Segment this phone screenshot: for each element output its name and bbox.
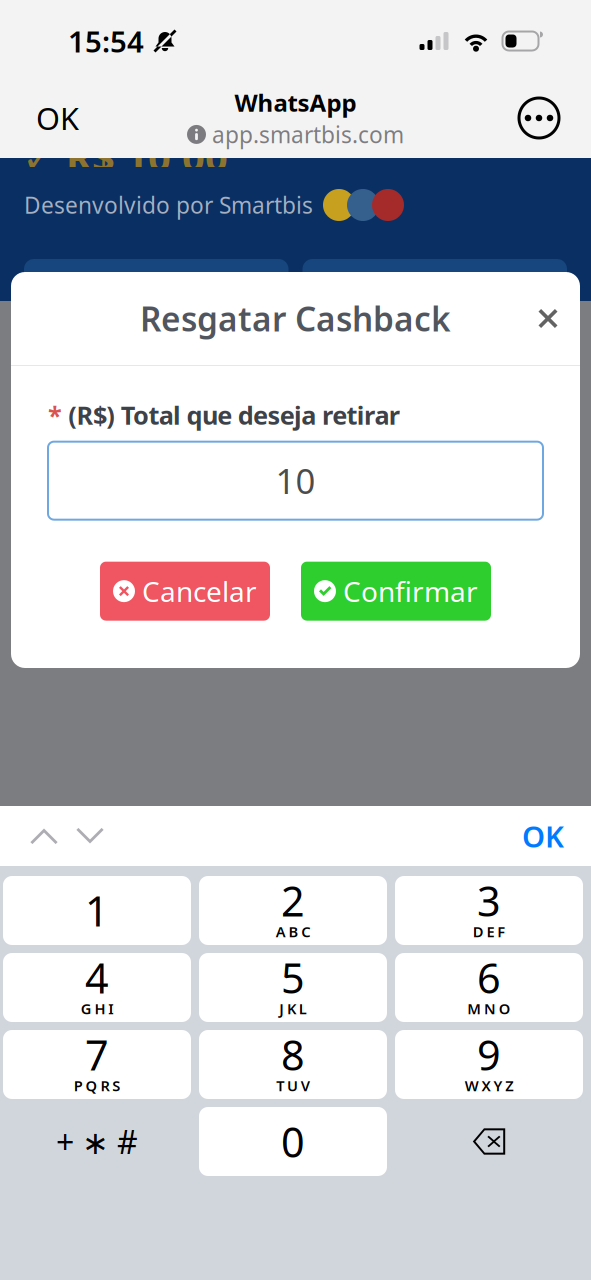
button[interactable]: 3 [395,876,583,945]
button[interactable]: More options [511,90,567,146]
staticText: Desenvolvido por Smartbis [24,190,313,220]
staticText: 9 [477,1027,501,1082]
staticText: 6 [477,950,501,1005]
button[interactable]: 7 [3,1030,191,1099]
button[interactable]: Previous field [15,810,73,861]
staticText: * [48,398,62,432]
staticText: Resgatar Cashback [140,296,451,341]
staticText: MNO [467,999,511,1018]
staticText: Confirmar [343,573,478,610]
staticText: WhatsApp [234,86,356,118]
staticText: WXYZ [465,1076,513,1095]
button[interactable]: 6 [395,953,583,1022]
staticText: ABC [276,922,310,941]
staticText: 4 [85,950,109,1005]
button[interactable]: OK [510,804,576,867]
staticText: 3 [477,873,501,928]
staticText: ✓ R$ 10,00 [22,130,228,183]
button[interactable]: 9 [395,1030,583,1099]
staticText: TUV [276,1076,310,1095]
button[interactable]: 1 [3,876,191,945]
staticText: DEF [473,922,505,941]
button[interactable]: 5 [199,953,387,1022]
staticText: PQRS [74,1076,120,1095]
staticText: + ∗ # [56,1120,138,1163]
button[interactable]: Cancelar [100,562,270,621]
button[interactable]: Symbols [3,1107,191,1176]
staticText: 5 [281,950,305,1005]
staticText: OK [36,98,79,138]
staticText: 7 [85,1027,109,1082]
staticText: (R$) Total que deseja retirar [62,398,400,432]
staticText: 10 [275,458,315,504]
staticText: OK [522,816,564,855]
button[interactable]: Next field [61,810,119,861]
staticText: 15:54 [68,21,144,60]
button[interactable]: Confirmar [301,562,491,621]
staticText: Cancelar [142,573,257,610]
staticText: GHI [81,999,113,1018]
staticText: 8 [281,1027,305,1082]
button[interactable]: OK [24,88,91,148]
button[interactable]: 0 [199,1107,387,1176]
button[interactable]: Close [527,297,569,339]
button[interactable]: 8 [199,1030,387,1099]
staticText: 2 [281,873,305,928]
staticText: 1 [85,883,109,938]
staticText: 0 [281,1114,305,1169]
button[interactable]: 2 [199,876,387,945]
button[interactable]: 4 [3,953,191,1022]
button[interactable]: Delete [395,1107,583,1176]
staticText: app.smartbis.com [212,119,404,149]
staticText: JKL [279,999,307,1018]
